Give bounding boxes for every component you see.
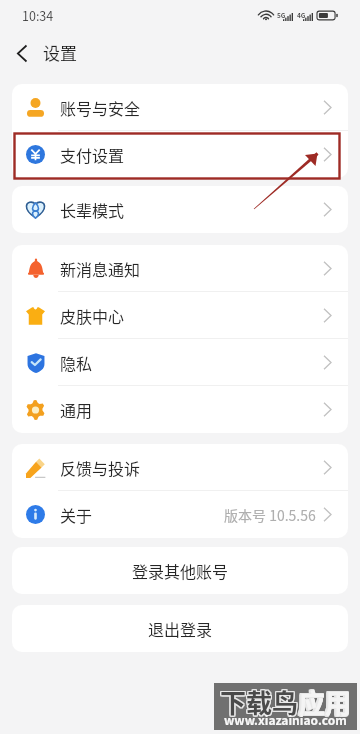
button[interactable]: 新消息通知 (12, 245, 348, 292)
staticText: 下载鸟应用 (219, 683, 350, 721)
staticText: 设置 (43, 40, 77, 65)
button[interactable]: 账号与安全 (12, 84, 348, 131)
staticText: 4G (297, 10, 306, 19)
staticText: 10:34 (22, 6, 54, 24)
staticText: 下载鸟应用 (221, 683, 352, 721)
staticText: 登录其他账号 (132, 559, 229, 582)
staticText: 下载鸟应用 (219, 684, 350, 722)
button[interactable]: 反馈与投诉 (12, 444, 348, 491)
staticText: 账号与安全 (60, 96, 141, 119)
staticText: 隐私 (60, 351, 93, 374)
button[interactable]: 支付设置 (12, 131, 348, 178)
staticText: 下载鸟应用 (221, 682, 352, 720)
staticText: 下载鸟应用 (221, 684, 352, 722)
staticText: 新消息通知 (60, 257, 141, 280)
button[interactable]: 长辈模式 (12, 186, 348, 233)
button[interactable]: 返回 (0, 31, 44, 75)
button[interactable]: 皮肤中心 (12, 292, 348, 339)
button[interactable]: 登录其他账号 (12, 547, 348, 594)
staticText: www.xiazainiao.com (224, 711, 347, 728)
button[interactable]: 隐私 (12, 339, 348, 386)
staticText: 皮肤中心 (60, 304, 125, 327)
button[interactable]: 退出登录 (12, 605, 348, 652)
staticText: 下载鸟应用 (220, 682, 351, 720)
staticText: 关于 (60, 503, 93, 526)
staticText: 通用 (60, 398, 93, 421)
staticText: 支付设置 (60, 143, 125, 166)
button[interactable]: 通用 (12, 386, 348, 433)
staticText: 长辈模式 (60, 198, 125, 221)
staticText: 5G (277, 10, 286, 19)
staticText: 退出登录 (148, 617, 213, 640)
staticText: 反馈与投诉 (60, 456, 141, 479)
staticText: 下载鸟应用 (220, 684, 351, 722)
staticText: 下载鸟应用 (219, 682, 350, 720)
staticText: 应用 (299, 683, 352, 721)
staticText: 版本号 10.5.56 (224, 505, 316, 525)
staticText: 下载鸟 (220, 683, 299, 721)
button[interactable]: 关于 (12, 491, 348, 538)
